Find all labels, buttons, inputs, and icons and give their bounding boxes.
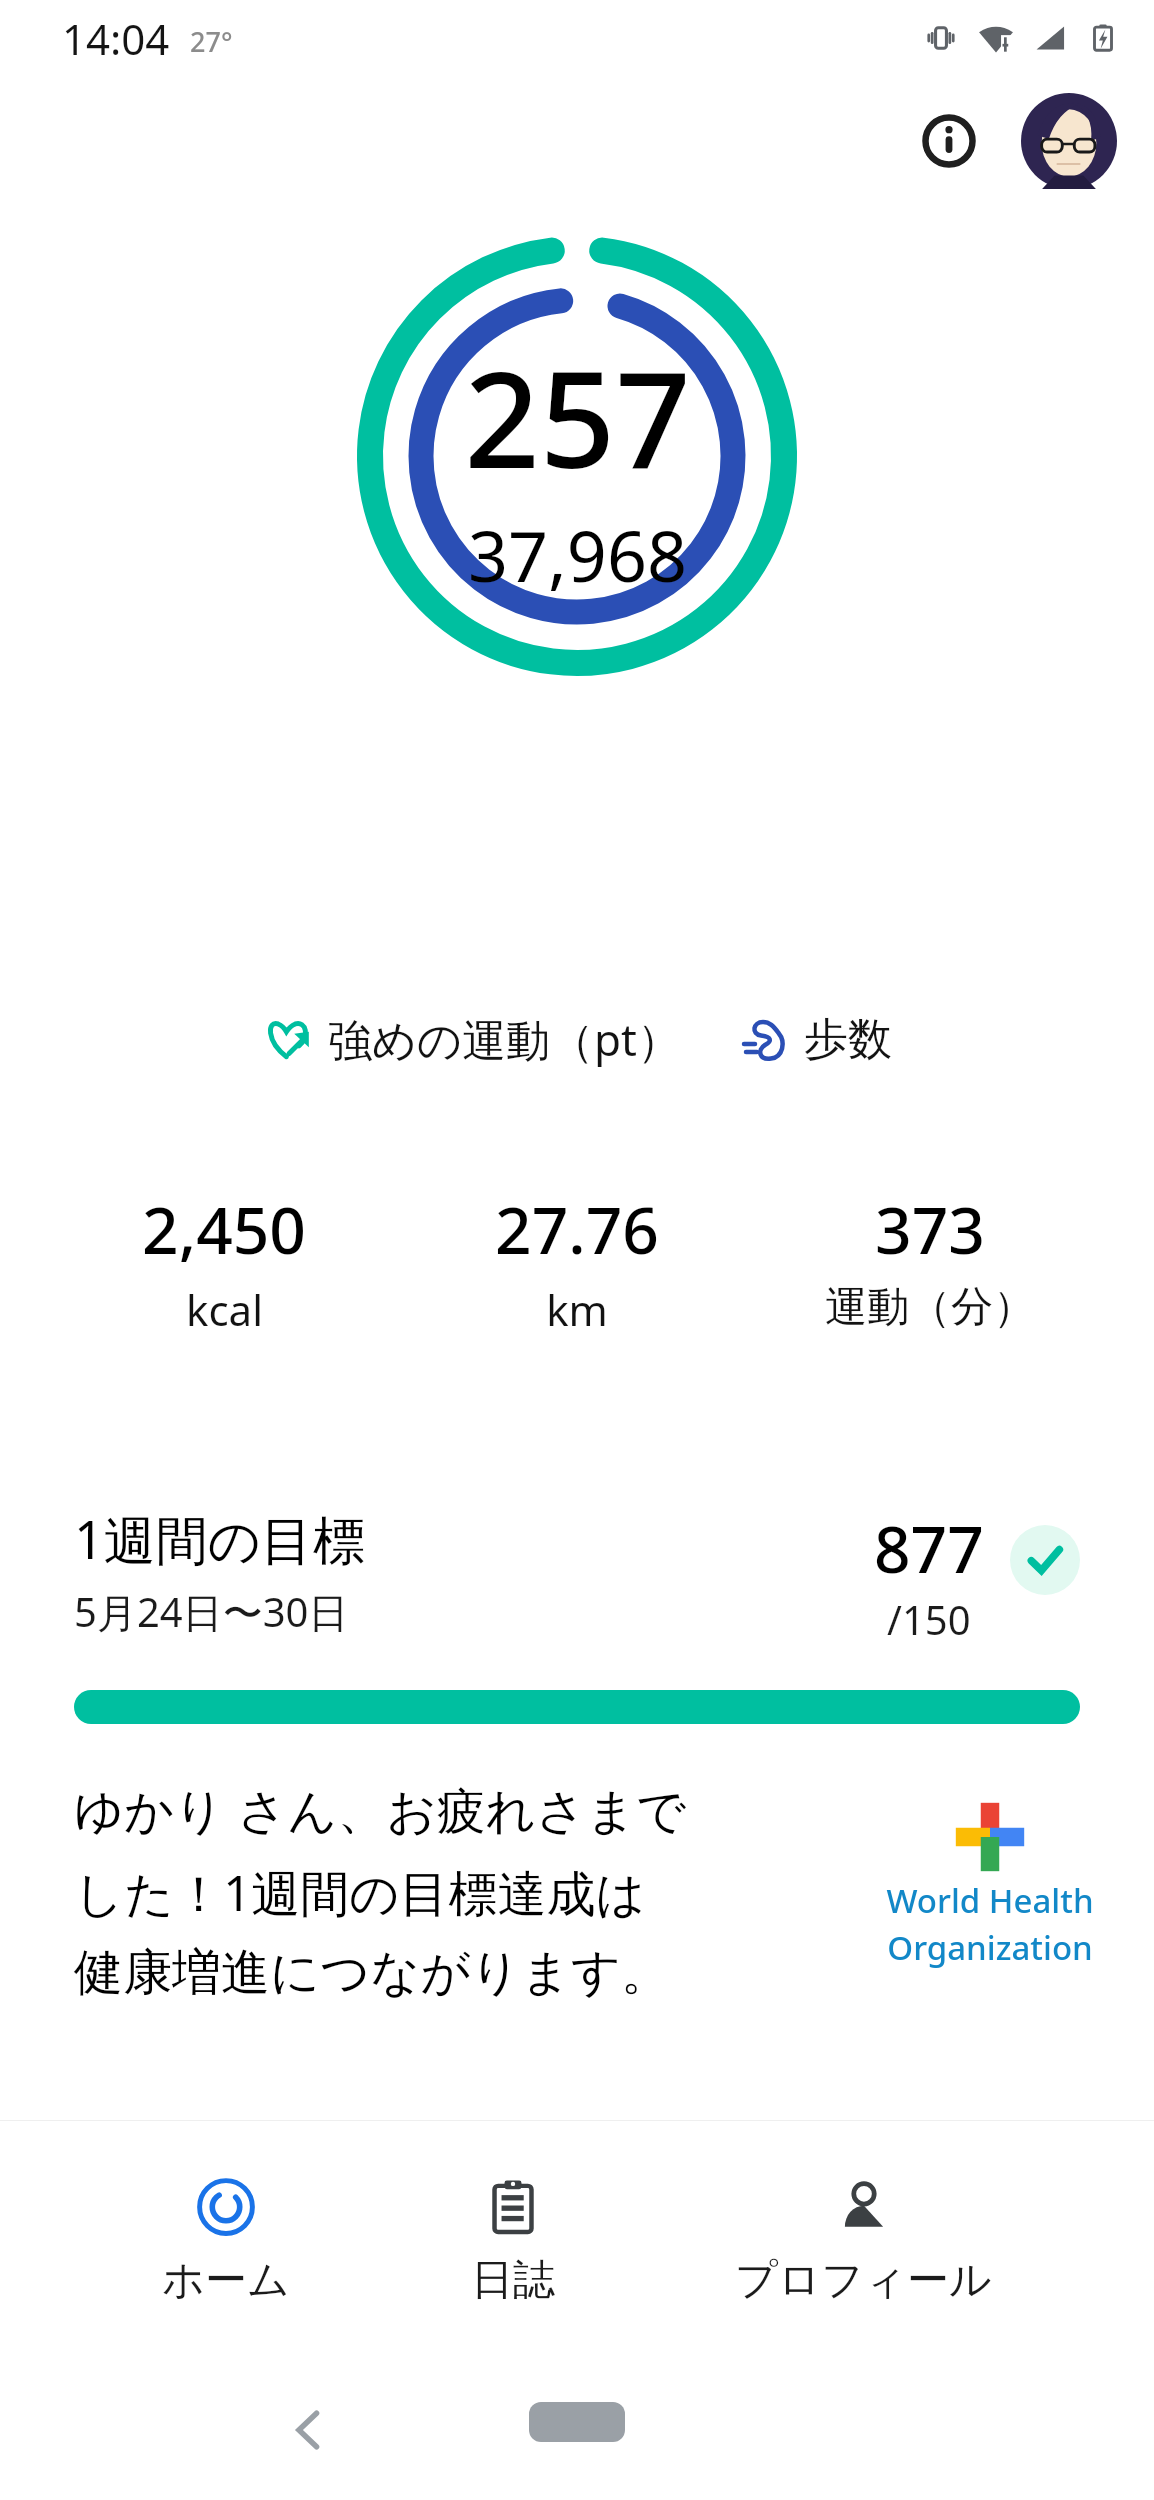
button[interactable]: 強めの運動（pt）	[252, 1003, 692, 1075]
button[interactable]: 日誌	[453, 2166, 573, 2315]
staticText: した！1週間の目標達成は	[74, 1859, 646, 1926]
button[interactable]: Profile	[1014, 86, 1124, 196]
staticText: 37,968	[468, 507, 687, 602]
button[interactable]: ホーム	[144, 2166, 308, 2315]
staticText: 27°	[190, 23, 233, 60]
staticText: 歩数	[804, 1012, 892, 1067]
staticText: 5月24日〜30日	[74, 1584, 349, 1639]
button[interactable]: プロフィール	[717, 2166, 1010, 2315]
staticText: 日誌	[471, 2254, 555, 2307]
staticText: /150	[887, 1592, 971, 1646]
button[interactable]: 27.76	[400, 1186, 753, 1338]
staticText: Organization	[887, 1925, 1093, 1970]
staticText: ホーム	[162, 2254, 290, 2307]
staticText: 877	[874, 1505, 984, 1592]
staticText: 健康増進につながります。	[74, 1942, 671, 2004]
staticText: 14:04	[62, 10, 170, 67]
button[interactable]: Back	[286, 2407, 332, 2453]
button[interactable]: 歩数	[732, 1006, 902, 1073]
staticText: 2,450	[142, 1186, 306, 1273]
staticText: 27.76	[495, 1186, 659, 1273]
staticText: ゆかり さん、お疲れさまで	[74, 1776, 687, 1843]
button[interactable]: 2,450	[48, 1186, 400, 1338]
staticText: 運動（分）	[825, 1281, 1035, 1334]
staticText: 1週間の目標	[74, 1503, 365, 1574]
staticText: World Health	[886, 1878, 1094, 1923]
button[interactable]: Home	[529, 2402, 625, 2442]
staticText: km	[546, 1281, 608, 1338]
staticText: kcal	[186, 1281, 263, 1338]
button[interactable]: 373	[753, 1186, 1106, 1334]
staticText: 強めの運動（pt）	[328, 1009, 682, 1069]
button[interactable]: 1週間の目標	[30, 1455, 1124, 2120]
staticText: プロフィール	[735, 2254, 992, 2307]
button[interactable]: Info	[904, 96, 994, 186]
staticText: 257	[464, 327, 691, 507]
staticText: 373	[875, 1186, 985, 1273]
